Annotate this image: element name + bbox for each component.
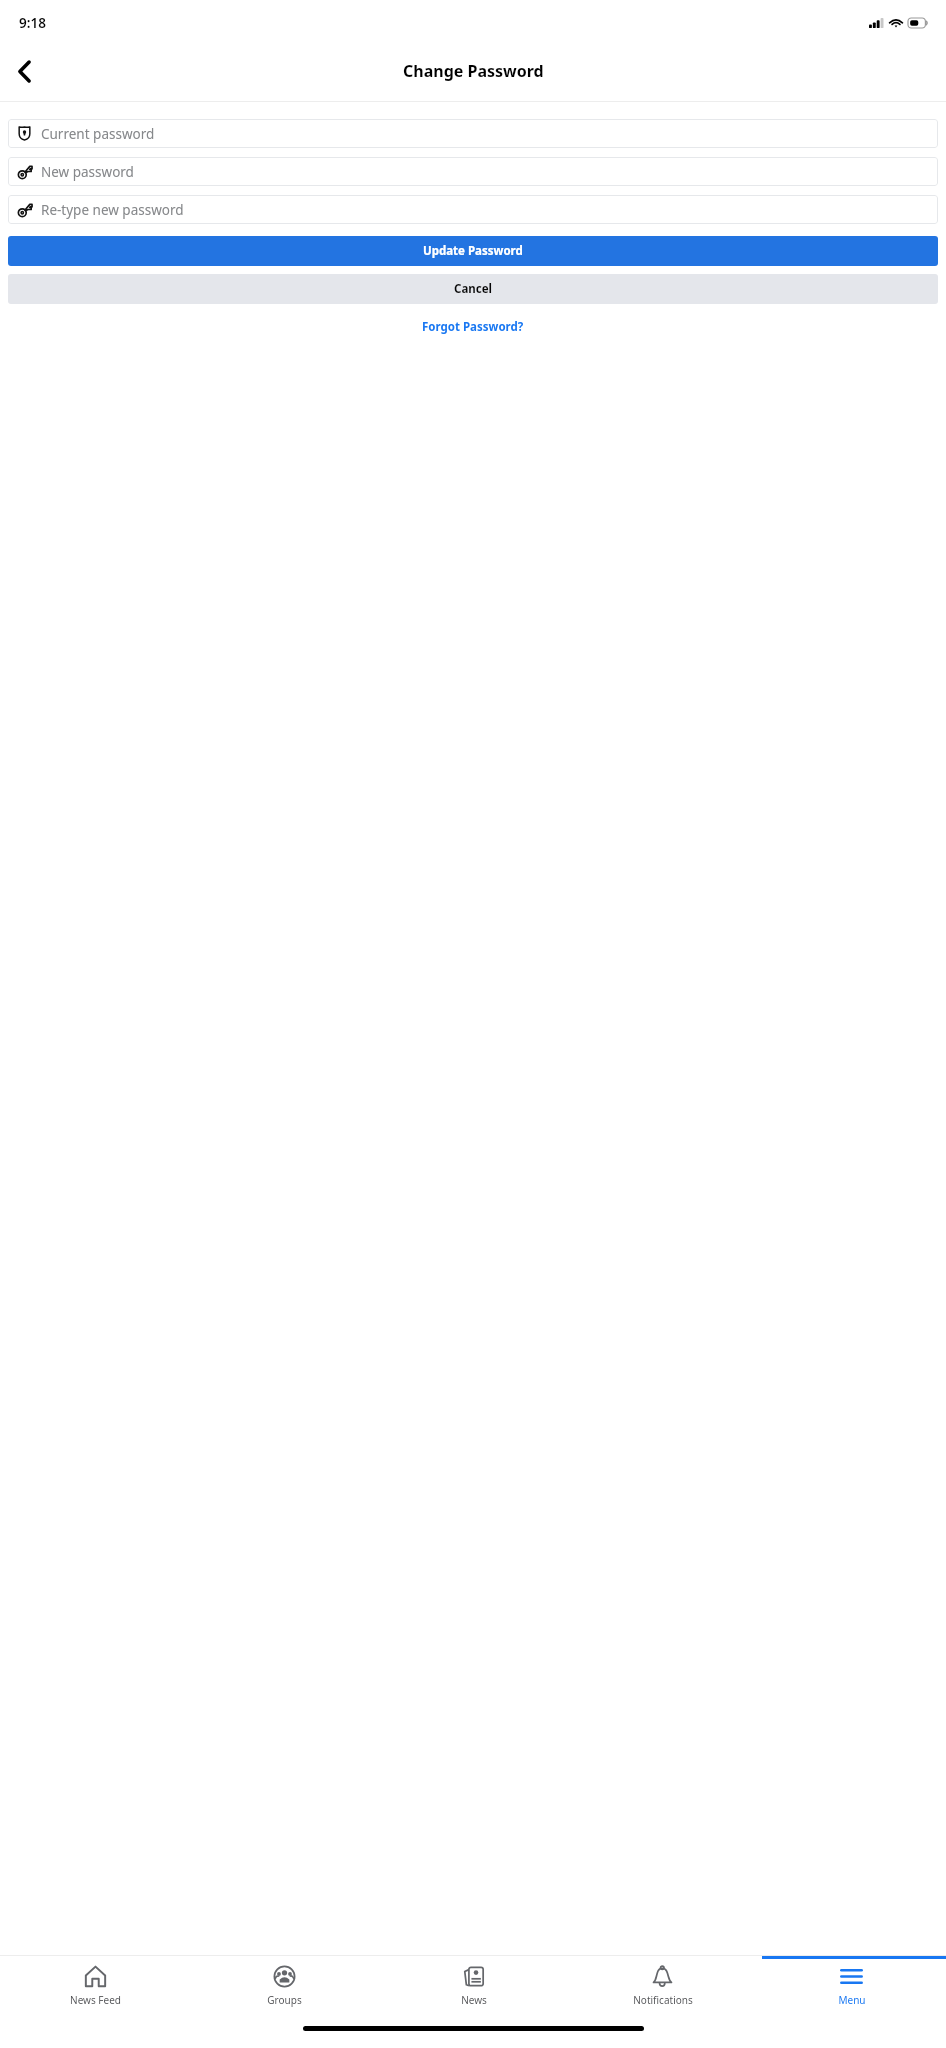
staticText: New password bbox=[41, 163, 134, 181]
button[interactable]: Current password bbox=[8, 119, 938, 148]
button[interactable]: Cancel bbox=[8, 274, 938, 304]
button[interactable]: News bbox=[379, 1956, 568, 2014]
staticText: Current password bbox=[41, 125, 155, 143]
button[interactable]: New password bbox=[8, 157, 938, 186]
staticText: Update Password bbox=[423, 243, 523, 259]
staticText: Notifications bbox=[633, 1993, 693, 2007]
button[interactable]: Update Password bbox=[8, 236, 938, 266]
staticText: 9:18 bbox=[19, 14, 46, 32]
button[interactable]: Groups bbox=[190, 1956, 379, 2014]
staticText: Change Password bbox=[403, 60, 544, 82]
staticText: Forgot Password? bbox=[422, 319, 524, 335]
button[interactable]: Re-type new password bbox=[8, 195, 938, 224]
button[interactable]: Notifications bbox=[568, 1956, 757, 2014]
button[interactable]: Menu bbox=[757, 1956, 946, 2014]
staticText: News bbox=[461, 1993, 487, 2007]
staticText: Menu bbox=[838, 1993, 866, 2007]
button[interactable]: Back bbox=[0, 47, 48, 95]
staticText: Groups bbox=[267, 1993, 302, 2007]
staticText: Re-type new password bbox=[41, 201, 184, 219]
staticText: News Feed bbox=[70, 1993, 121, 2007]
staticText: Cancel bbox=[454, 281, 492, 297]
button[interactable]: Forgot Password? bbox=[414, 317, 532, 337]
button[interactable]: News Feed bbox=[0, 1956, 190, 2014]
